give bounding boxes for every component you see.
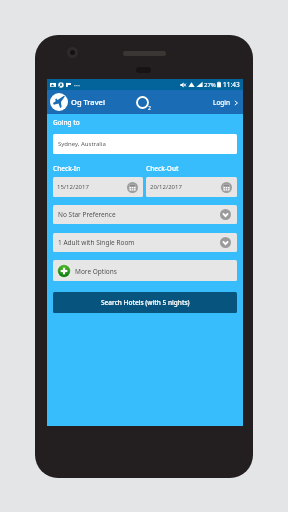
staticText: Sydney, Australia — [58, 140, 106, 148]
button[interactable]: 20/12/2017 — [146, 177, 237, 197]
button[interactable]: Login — [209, 95, 243, 110]
button[interactable]: Og Travel — [47, 91, 109, 113]
staticText: Check-Out — [146, 164, 179, 173]
staticText: Going to — [53, 118, 80, 127]
staticText: Check-In — [53, 164, 81, 173]
staticText: 15/12/2017 — [57, 183, 89, 191]
staticText: Og Travel — [71, 97, 105, 107]
staticText: No Star Preference — [58, 210, 116, 219]
staticText: 2 — [148, 105, 151, 112]
button[interactable]: 1 Adult with Single Room — [53, 233, 237, 252]
button[interactable]: No Star Preference — [53, 205, 237, 224]
staticText: 27% — [204, 81, 216, 89]
button[interactable]: 15/12/2017 — [53, 177, 143, 197]
staticText: 1 Adult with Single Room — [58, 238, 135, 247]
staticText: Login — [213, 98, 231, 107]
staticText: More Options — [75, 267, 117, 276]
staticText: Search Hotels (with 5 nights) — [101, 298, 190, 307]
button[interactable]: More Options — [53, 260, 237, 281]
button[interactable]: Sydney, Australia — [53, 134, 237, 154]
button[interactable]: Search Hotels (with 5 nights) — [53, 292, 237, 313]
staticText: 11:43 — [223, 80, 240, 89]
staticText: 20/12/2017 — [150, 183, 182, 191]
